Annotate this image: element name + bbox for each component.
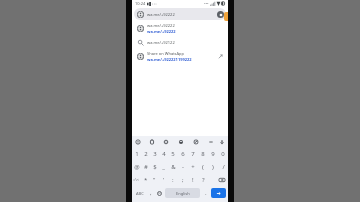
staticText: 8	[201, 150, 205, 158]
staticText: $	[153, 163, 157, 171]
staticText: (	[202, 163, 204, 171]
button[interactable]: /	[218, 160, 228, 173]
staticText: _	[162, 163, 165, 171]
staticText: *	[144, 176, 148, 184]
staticText: /	[222, 163, 225, 171]
button[interactable]: )	[208, 160, 218, 173]
button[interactable]: #	[141, 160, 150, 173]
button[interactable]: English	[165, 188, 200, 198]
button[interactable]: "	[150, 173, 159, 186]
staticText: 3	[153, 150, 157, 158]
button[interactable]: 0	[218, 147, 228, 160]
button[interactable]: 5	[168, 147, 178, 160]
button[interactable]: Clear search	[217, 11, 224, 18]
staticText: .	[205, 189, 207, 197]
staticText: )	[212, 163, 214, 171]
staticText: 9	[211, 150, 215, 158]
staticText: +	[191, 163, 195, 171]
button[interactable]: Emoji	[155, 188, 164, 198]
staticText: 5	[171, 150, 175, 158]
button[interactable]: .	[201, 188, 210, 198]
staticText: 0	[221, 150, 225, 158]
button[interactable]: wa.me/+92222	[132, 21, 228, 35]
button[interactable]: +	[188, 160, 198, 173]
staticText: :	[172, 176, 174, 184]
button[interactable]: More symbols	[132, 173, 141, 186]
button[interactable]: Clipboard	[148, 138, 156, 146]
button[interactable]: Stickers	[177, 138, 185, 146]
staticText: 6	[181, 150, 185, 158]
staticText: 10:24	[135, 1, 146, 6]
staticText: 7	[191, 150, 195, 158]
button[interactable]: Insert suggestion	[217, 53, 223, 59]
button[interactable]: 8	[198, 147, 208, 160]
staticText: &	[171, 163, 176, 171]
staticText: !	[192, 176, 194, 184]
staticText: wa.me/+92222	[147, 23, 175, 28]
button[interactable]: Share on WhatsApp	[132, 49, 228, 63]
button[interactable]: $	[150, 160, 159, 173]
button[interactable]: (	[198, 160, 208, 173]
staticText: #	[144, 163, 148, 171]
button[interactable]: Enter	[211, 188, 226, 198]
staticText: 2	[144, 150, 148, 158]
button[interactable]: Voice input	[218, 138, 226, 146]
staticText: =\<	[133, 177, 140, 182]
staticText: 4	[162, 150, 166, 158]
staticText: 1	[135, 150, 139, 158]
button[interactable]: 7	[188, 147, 198, 160]
staticText: wa.me/+92222	[147, 12, 175, 17]
button[interactable]: 6	[178, 147, 188, 160]
button[interactable]: _	[159, 160, 168, 173]
staticText: "	[153, 176, 156, 184]
staticText: ABC	[136, 191, 144, 196]
button[interactable]: ;	[178, 173, 188, 186]
button[interactable]: *	[141, 173, 150, 186]
button[interactable]: 3	[150, 147, 159, 160]
staticText: English	[176, 191, 190, 196]
staticText: ?	[202, 176, 205, 184]
button[interactable]: Clipboard suggestion	[134, 138, 142, 146]
button[interactable]: :	[168, 173, 178, 186]
staticText: ,	[150, 189, 152, 197]
button[interactable]: Translate	[192, 138, 200, 146]
button[interactable]: @	[132, 160, 141, 173]
button[interactable]: '	[159, 173, 168, 186]
button[interactable]: 2	[141, 147, 150, 160]
button[interactable]: Settings	[162, 138, 170, 146]
staticText: wa.me/+922221199222	[147, 57, 192, 62]
button[interactable]: 1	[132, 147, 141, 160]
staticText: wa.me/+92222	[147, 29, 176, 34]
button[interactable]: wa.me/+92122	[132, 35, 228, 49]
staticText: '	[163, 176, 165, 184]
staticText: wa.me/+92122	[147, 40, 175, 45]
button[interactable]: ,	[146, 188, 155, 198]
button[interactable]: -	[178, 160, 188, 173]
staticText: @	[134, 163, 140, 171]
button[interactable]: wa.me/+92222	[134, 8, 226, 20]
staticText: Share on WhatsApp	[147, 51, 184, 56]
button[interactable]: !	[188, 173, 198, 186]
button[interactable]: Backspace	[216, 173, 228, 186]
button[interactable]: &	[168, 160, 178, 173]
button[interactable]: 4	[159, 147, 168, 160]
button[interactable]: ABC	[134, 188, 146, 198]
staticText: -	[182, 163, 184, 171]
staticText: ;	[182, 176, 184, 184]
button[interactable]: 9	[208, 147, 218, 160]
button[interactable]: More options	[207, 138, 215, 146]
button[interactable]: ?	[198, 173, 208, 186]
